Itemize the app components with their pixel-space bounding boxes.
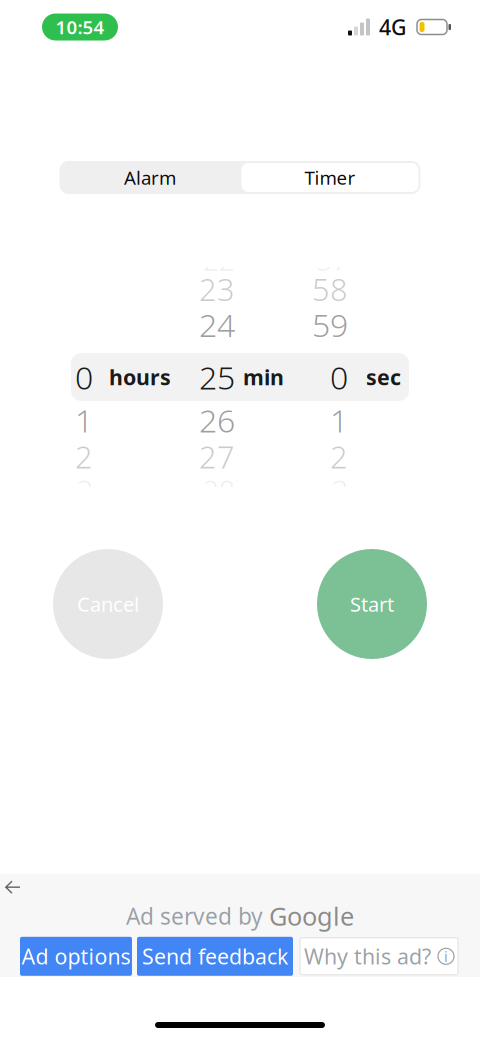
button[interactable]: Start	[317, 549, 427, 659]
staticText: 1	[75, 399, 93, 441]
button[interactable]: Back	[0, 871, 26, 899]
button[interactable]: Cancel	[53, 549, 163, 659]
staticText: Why this ad?	[304, 942, 431, 970]
staticText: Timer	[304, 165, 355, 190]
staticText: 26	[199, 399, 235, 441]
staticText: 28	[203, 471, 235, 509]
staticText: Ad served by	[126, 901, 263, 931]
staticText: 2	[75, 436, 93, 477]
staticText: Send feedback	[142, 942, 288, 970]
staticText: 1	[330, 399, 348, 441]
button[interactable]: Why this ad?	[298, 937, 460, 976]
staticText: 0	[330, 356, 348, 398]
staticText: 0	[75, 356, 93, 398]
staticText: min	[243, 363, 284, 391]
button[interactable]: Alarm	[59, 161, 240, 194]
staticText: 2	[330, 436, 348, 477]
staticText: hours	[109, 363, 171, 391]
staticText: 58	[312, 269, 348, 309]
staticText: 23	[199, 269, 235, 309]
staticText: Cancel	[77, 591, 139, 617]
button[interactable]: Send feedback	[137, 937, 293, 976]
button[interactable]: Ad options	[20, 937, 132, 976]
button[interactable]: Timer	[59, 161, 240, 194]
staticText: Start	[350, 591, 394, 617]
staticText: i	[444, 947, 448, 966]
staticText: 25	[199, 356, 235, 398]
staticText: Ad options	[21, 942, 130, 970]
staticText: Alarm	[124, 165, 176, 190]
staticText: 59	[312, 303, 348, 346]
staticText: 24	[199, 303, 235, 346]
staticText: sec	[366, 363, 401, 391]
staticText: Google	[269, 899, 354, 933]
staticText: 27	[199, 436, 235, 477]
staticText: 10:54	[55, 15, 104, 39]
staticText: 4G	[379, 13, 407, 41]
